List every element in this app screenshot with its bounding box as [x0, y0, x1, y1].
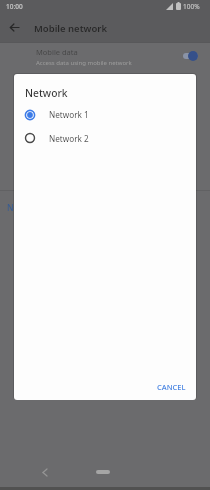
staticText: CANCEL	[157, 382, 186, 392]
staticText: Access data using mobile network	[36, 59, 132, 67]
button[interactable]: CANCEL	[148, 379, 194, 395]
button[interactable]	[7, 20, 22, 34]
staticText: Mobile network	[34, 22, 107, 35]
staticText: Network 2	[49, 133, 89, 144]
staticText: Mobile data	[36, 47, 78, 57]
staticText: N	[7, 202, 14, 214]
staticText: Network	[25, 86, 68, 99]
button[interactable]	[39, 466, 51, 478]
button[interactable]	[182, 50, 198, 62]
button[interactable]: Mobile data	[0, 42, 210, 70]
staticText: Network 1	[49, 109, 89, 120]
staticText: 10:00	[6, 2, 23, 11]
button[interactable]	[96, 470, 110, 474]
button[interactable]: Network 1	[14, 103, 196, 126]
staticText: 100%	[183, 2, 200, 11]
button[interactable]: Network 2	[14, 126, 196, 150]
